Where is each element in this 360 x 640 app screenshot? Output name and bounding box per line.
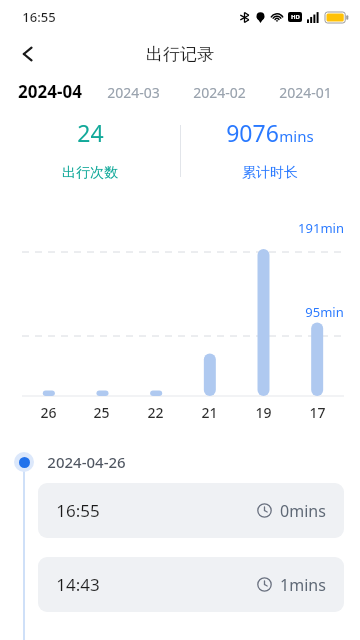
staticText: 累计时长 — [242, 164, 298, 182]
staticText: 1mins — [280, 574, 326, 596]
staticText: 2024-04 — [18, 80, 82, 103]
staticText: 16:55 — [56, 499, 100, 522]
staticText: 0mins — [280, 500, 326, 522]
staticText: 22 — [147, 403, 164, 422]
button[interactable]: 2024-02 — [176, 83, 262, 103]
button[interactable]: 2024-01 — [262, 83, 348, 103]
staticText: 24 — [77, 117, 104, 148]
staticText: 出行次数 — [62, 164, 118, 182]
staticText: mins — [279, 126, 314, 146]
button[interactable]: 2024-04 — [18, 80, 90, 103]
button[interactable]: 16:55 — [38, 483, 344, 538]
staticText: 95min — [305, 303, 344, 321]
staticText: 26 — [40, 403, 57, 422]
button[interactable]: 14:43 — [38, 557, 344, 612]
button[interactable]: 24 — [0, 117, 180, 182]
staticText: 25 — [93, 403, 110, 422]
staticText: 出行记录 — [146, 44, 214, 65]
staticText: HD — [291, 13, 300, 21]
staticText: 2024-01 — [279, 83, 332, 102]
button[interactable]: 9076 — [180, 117, 360, 182]
button[interactable]: Back — [8, 34, 48, 74]
staticText: 19 — [255, 403, 272, 422]
button[interactable]: 2024-03 — [90, 83, 176, 103]
staticText: 2024-04-26 — [47, 452, 126, 472]
staticText: 2024-02 — [193, 83, 246, 102]
staticText: 2024-03 — [107, 83, 160, 102]
staticText: 17 — [309, 403, 326, 422]
staticText: 9076 — [226, 117, 279, 148]
staticText: 16:55 — [22, 8, 56, 26]
staticText: 14:43 — [56, 573, 100, 596]
staticText: 21 — [201, 403, 218, 422]
staticText: 191min — [298, 219, 344, 237]
